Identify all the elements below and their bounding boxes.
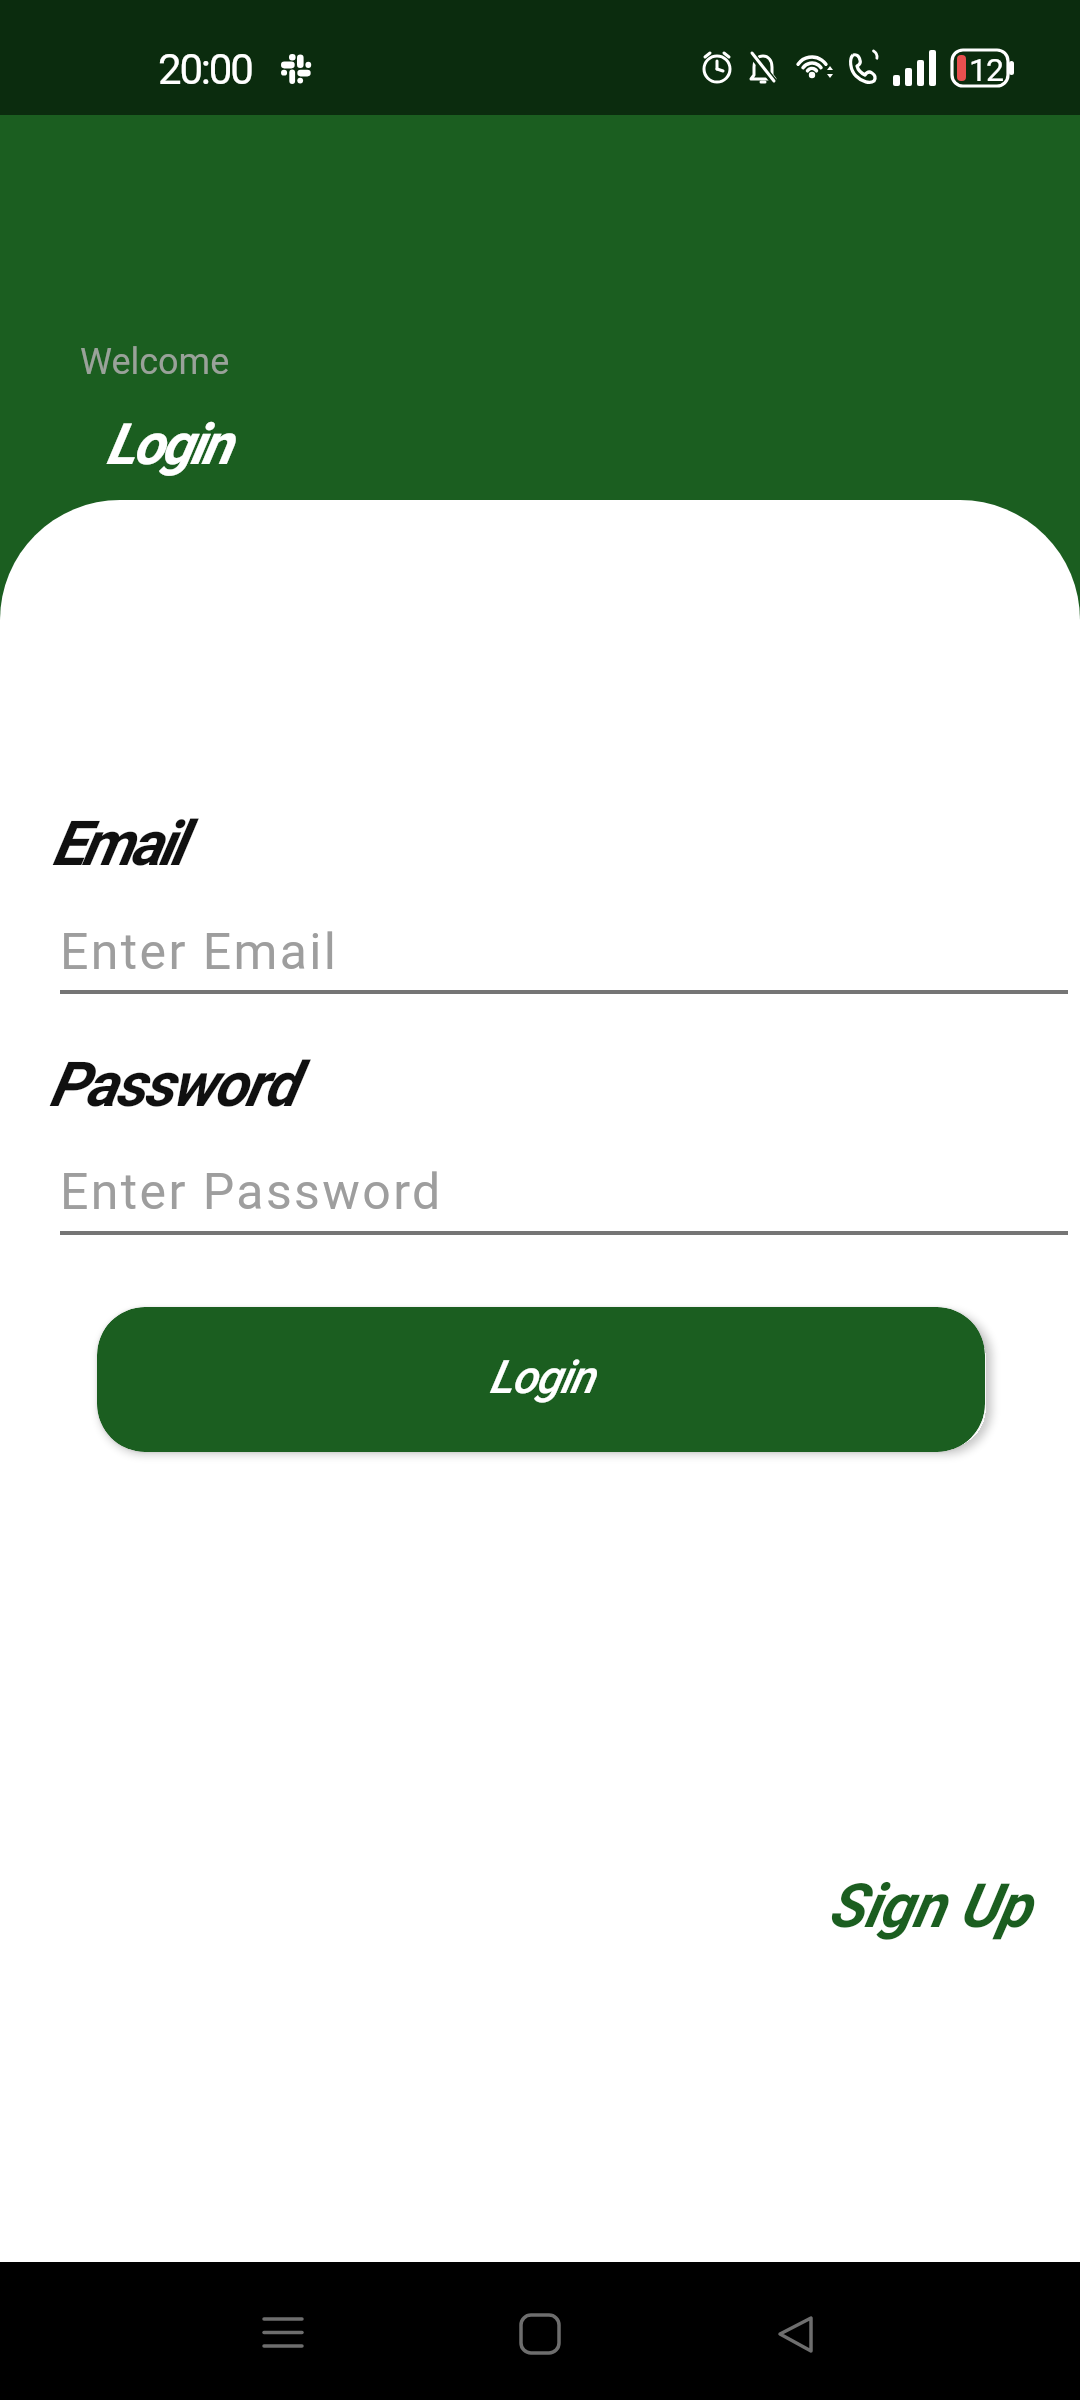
staticText: 12 bbox=[969, 51, 1003, 89]
staticText: Email bbox=[52, 807, 183, 880]
staticText: Password bbox=[49, 1048, 296, 1121]
staticText: Login bbox=[489, 1350, 594, 1404]
button[interactable] bbox=[758, 2296, 834, 2372]
staticText: Welcome bbox=[80, 341, 230, 383]
button[interactable] bbox=[502, 2296, 578, 2372]
staticText: Login bbox=[106, 411, 230, 478]
button[interactable]: Enter Email bbox=[60, 920, 1068, 994]
staticText: 20:00 bbox=[158, 45, 252, 94]
button[interactable]: Enter Password bbox=[60, 1160, 1068, 1235]
button[interactable]: Sign Up bbox=[828, 1870, 1031, 1941]
button[interactable] bbox=[245, 2296, 321, 2372]
button[interactable]: Login bbox=[97, 1307, 985, 1452]
staticText: Enter Password bbox=[60, 1163, 443, 1222]
staticText: Enter Email bbox=[60, 923, 339, 982]
